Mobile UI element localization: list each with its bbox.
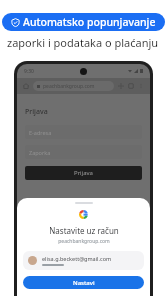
staticText: peachbankgroup.com — [43, 83, 95, 90]
staticText: elisa.g.beckett@gmail.com — [42, 255, 112, 262]
button[interactable]: Nastavi — [23, 276, 144, 289]
staticText: Nastavite uz račun — [49, 225, 119, 236]
button[interactable]: E-adresa — [25, 125, 142, 139]
staticText: Automatsko popunjavanje — [23, 15, 156, 29]
button[interactable]: Prijava — [25, 166, 142, 180]
staticText: E-adresa — [29, 129, 52, 136]
staticText: 9:30 — [24, 68, 34, 75]
button[interactable]: Home — [23, 83, 29, 89]
button[interactable]: Zaporka — [25, 145, 142, 159]
button[interactable]: elisa.g.beckett@gmail.com — [23, 251, 144, 270]
staticText: Zaporka — [29, 149, 51, 156]
button[interactable]: Automatsko popunjavanje — [2, 13, 165, 31]
staticText: Nastavi — [73, 279, 95, 287]
staticText: Prijava — [25, 107, 48, 117]
button[interactable]: Share — [118, 83, 124, 89]
staticText: peachbankgroup.com — [58, 238, 110, 245]
staticText: Prijava — [74, 169, 93, 177]
button[interactable]: Tabs — [128, 83, 134, 89]
button[interactable]: peachbankgroup.com — [33, 81, 114, 91]
staticText: zaporki i podataka o plaćanju — [7, 35, 159, 50]
